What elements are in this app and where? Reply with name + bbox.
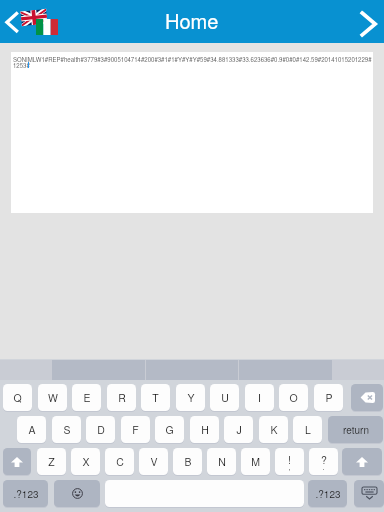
staticText: Q	[13, 390, 22, 405]
staticText: .	[322, 461, 325, 472]
button[interactable]: Y	[176, 384, 205, 411]
button[interactable]: H	[190, 416, 219, 443]
staticText: A	[28, 422, 36, 437]
button[interactable]: V	[139, 448, 168, 475]
button[interactable]: X	[71, 448, 100, 475]
button[interactable]: ?	[309, 448, 338, 475]
button[interactable]: Backspace	[351, 384, 383, 411]
staticText: N	[218, 454, 226, 469]
button[interactable]: !	[275, 448, 304, 475]
staticText: .?123	[315, 487, 341, 501]
button[interactable]: W	[38, 384, 67, 411]
button[interactable]: D	[86, 416, 115, 443]
button[interactable]: O	[279, 384, 308, 411]
button[interactable]: Emoji	[54, 480, 100, 507]
button[interactable]: U	[210, 384, 239, 411]
button[interactable]: Q	[3, 384, 32, 411]
button[interactable]: J	[224, 416, 253, 443]
staticText: H	[201, 422, 209, 437]
staticText: P	[325, 390, 333, 405]
staticText: I	[258, 390, 261, 405]
button[interactable]: C	[105, 448, 134, 475]
staticText: X	[82, 454, 90, 469]
button[interactable]: L	[293, 416, 322, 443]
button[interactable]: T	[141, 384, 170, 411]
staticText: S	[63, 422, 71, 437]
staticText: !	[288, 452, 291, 467]
staticText: L	[305, 422, 311, 437]
staticText: M	[251, 454, 260, 469]
staticText: E	[83, 390, 91, 405]
button[interactable]: SONIMLW1#REP#health#3779#3#9005104714#20…	[11, 52, 373, 213]
button[interactable]: N	[207, 448, 236, 475]
staticText: J	[236, 422, 242, 437]
staticText: .?123	[13, 487, 39, 501]
staticText: R	[118, 390, 126, 405]
staticText: D	[97, 422, 105, 437]
button[interactable]: F	[121, 416, 150, 443]
staticText: return	[343, 423, 369, 437]
button[interactable]: I	[245, 384, 274, 411]
button[interactable]: Z	[37, 448, 66, 475]
staticText: ?	[321, 452, 327, 467]
staticText: K	[270, 422, 278, 437]
button[interactable]: Forward	[358, 4, 384, 42]
button[interactable]: Back	[0, 4, 24, 40]
staticText: T	[152, 390, 159, 405]
staticText: SONIMLW1#REP#health#3779#3#9005104714#20…	[13, 55, 372, 70]
staticText: U	[221, 390, 229, 405]
button[interactable]: S	[52, 416, 81, 443]
staticText: V	[150, 454, 158, 469]
staticText: O	[289, 390, 298, 405]
button[interactable]: Hide keyboard	[354, 480, 384, 507]
button[interactable]: A	[17, 416, 46, 443]
button[interactable]: return	[328, 416, 383, 443]
button[interactable]: E	[72, 384, 101, 411]
staticText: Y	[187, 390, 195, 405]
button[interactable]: G	[155, 416, 184, 443]
button[interactable]: K	[259, 416, 288, 443]
button[interactable]: .?123	[308, 480, 347, 507]
button[interactable]: .?123	[3, 480, 48, 507]
button[interactable]: Shift	[342, 448, 382, 475]
staticText: B	[184, 454, 192, 469]
staticText: W	[48, 390, 58, 405]
staticText: C	[116, 454, 124, 469]
staticText: ,	[288, 461, 291, 472]
staticText: F	[132, 422, 139, 437]
button[interactable]: R	[107, 384, 136, 411]
button[interactable]: P	[314, 384, 343, 411]
staticText: Home	[165, 6, 219, 35]
staticText: G	[165, 422, 174, 437]
staticText: Z	[48, 454, 55, 469]
button[interactable]: Shift	[3, 448, 31, 475]
button[interactable]: B	[173, 448, 202, 475]
button[interactable]: M	[241, 448, 270, 475]
